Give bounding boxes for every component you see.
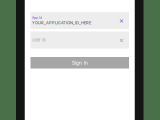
staticText: × xyxy=(119,16,124,25)
button[interactable]: Sign In xyxy=(30,57,129,68)
staticText: YOUR_APPLICATION_ID_HERE xyxy=(32,20,91,25)
staticText: User Id xyxy=(32,38,45,42)
staticText: Sign In xyxy=(72,59,88,66)
button[interactable]: App Id xyxy=(30,12,129,29)
button[interactable]: User Id xyxy=(30,31,129,48)
staticText: App Id xyxy=(32,16,42,20)
staticText: × xyxy=(119,36,124,44)
